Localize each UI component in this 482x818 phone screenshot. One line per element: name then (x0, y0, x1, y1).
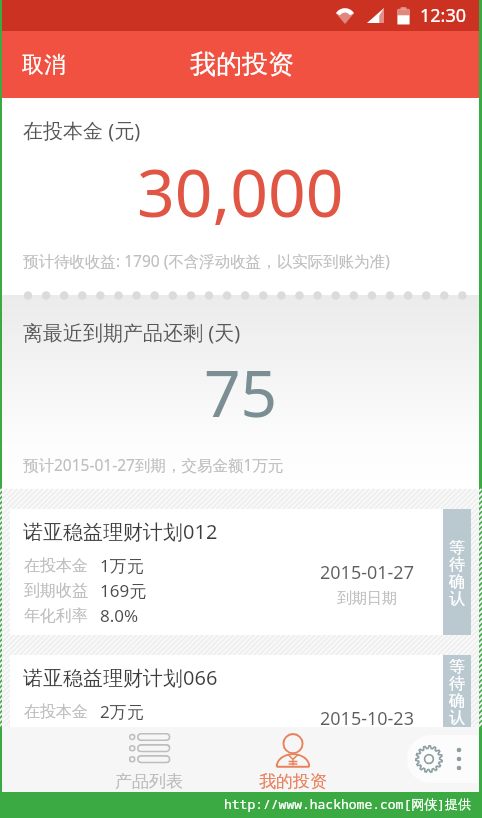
staticText: http://www.hackhome.com[网侠]提供 (224, 795, 472, 813)
button[interactable]: 诺亚稳益理财计划066 (10, 655, 471, 727)
staticText: 等 (449, 657, 465, 674)
staticText: 认 (449, 589, 465, 606)
staticText: 取消 (22, 51, 66, 79)
staticText: 2015-10-23 (320, 706, 414, 727)
staticText: 我的投资 (259, 771, 327, 792)
staticText: 在投本金 (元) (23, 117, 141, 144)
staticText: 在投本金 (24, 556, 100, 576)
staticText: 离最近到期产品还剩 (天) (23, 319, 241, 346)
staticText: 75 (204, 349, 278, 436)
staticText: 确 (449, 691, 465, 708)
staticText: 待 (449, 674, 465, 691)
staticText: 30,000 (137, 146, 344, 236)
button[interactable]: 取消 (2, 33, 86, 97)
button[interactable]: Settings (407, 735, 479, 783)
staticText: 预计待收收益: 1790 (不含浮动收益，以实际到账为准) (23, 250, 390, 271)
staticText: 年化利率 (24, 606, 100, 626)
button[interactable]: 诺亚稳益理财计划012 (10, 509, 471, 635)
staticText: 到期收益 (24, 581, 100, 601)
staticText: 诺亚稳益理财计划012 (23, 518, 218, 545)
staticText: 预计2015-01-27到期，交易金额1万元 (23, 454, 284, 475)
staticText: 2万元 (100, 700, 144, 723)
staticText: 认 (449, 708, 465, 725)
staticText: 2015-01-27 (320, 560, 414, 585)
staticText: 12:30 (420, 3, 467, 28)
staticText: 等 (449, 538, 465, 555)
staticText: 产品列表 (115, 771, 183, 792)
staticText: 确 (449, 572, 465, 589)
staticText: 诺亚稳益理财计划066 (23, 664, 218, 691)
staticText: 在投本金 (24, 702, 100, 722)
staticText: 我的投资 (190, 48, 294, 81)
button[interactable]: 我的投资 (221, 727, 365, 792)
staticText: 169元 (100, 579, 147, 602)
button[interactable]: 产品列表 (77, 727, 221, 792)
staticText: 到期日期 (337, 589, 397, 608)
staticText: 待 (449, 555, 465, 572)
staticText: 1万元 (100, 554, 144, 577)
staticText: 8.0% (100, 604, 139, 627)
